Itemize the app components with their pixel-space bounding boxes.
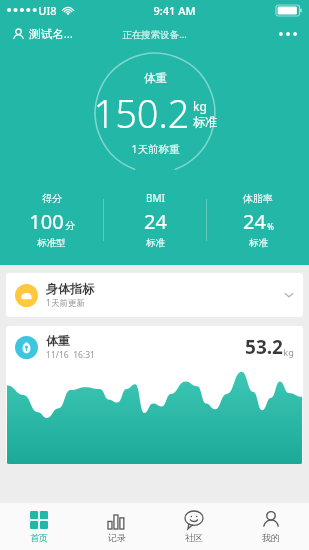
staticText: 体重 [46,333,70,348]
staticText: 测试名… [29,26,73,42]
button[interactable]: More options [267,24,309,44]
button[interactable]: 体重 [6,326,303,464]
staticText: 首页 [30,532,48,543]
staticText: 社区 [185,532,203,543]
staticText: 53.2 [245,334,283,360]
button[interactable]: 身体指标 [6,273,303,317]
button[interactable]: BMI [104,189,206,251]
staticText: 分 [65,219,75,232]
staticText: 1天前更新 [46,297,85,309]
button[interactable]: 体脂率 [207,190,309,251]
staticText: 9:41 AM [153,3,196,18]
staticText: UI8 [38,3,57,18]
button[interactable]: 记录 [78,503,155,550]
button[interactable]: 首页 [0,503,78,550]
staticText: kg [283,346,294,358]
staticText: 体脂率 [243,192,273,205]
staticText: 得分 [42,192,62,205]
staticText: 24 [144,208,167,235]
button[interactable]: 得分 [0,190,103,251]
button[interactable]: 测试名… [0,22,81,46]
staticText: 身体指标 [46,281,94,296]
staticText: 标准 [249,237,268,249]
staticText: 标准 [193,114,217,129]
staticText: 体重 [144,71,167,85]
staticText: 11/16 16:31 [46,349,95,361]
staticText: kg [193,98,207,114]
button[interactable]: 我的 [232,503,309,550]
staticText: BMI [146,191,165,205]
other: Expand [284,290,294,300]
staticText: 150.2 [93,87,190,139]
button[interactable]: 社区 [155,503,232,550]
staticText: 24 [243,208,266,235]
staticText: 100 [29,208,64,235]
staticText: % [267,221,274,232]
staticText: 标准 [146,237,165,249]
staticText: 1天前称重 [131,142,180,156]
staticText: 正在搜索设备… [122,28,187,41]
staticText: 标准型 [37,237,66,249]
staticText: 我的 [262,532,280,543]
staticText: 记录 [108,532,126,543]
